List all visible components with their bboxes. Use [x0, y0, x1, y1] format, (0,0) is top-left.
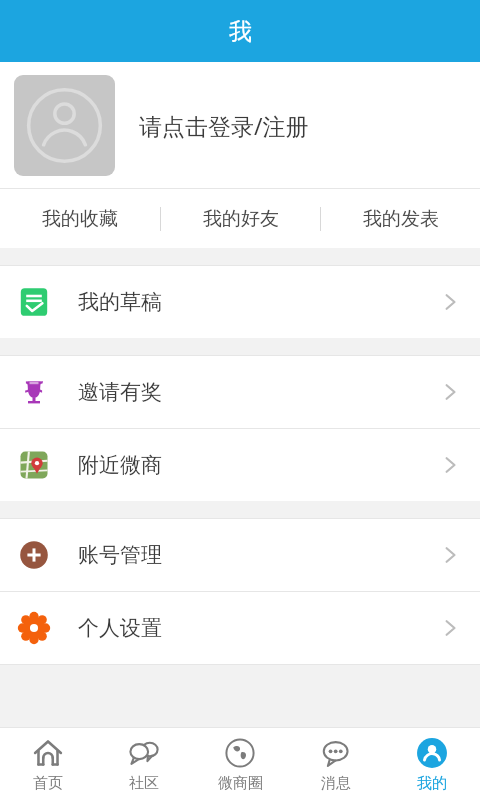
button[interactable]: 首页 — [0, 728, 96, 800]
staticText: 附近微商 — [78, 452, 162, 478]
button[interactable]: 消息 — [288, 728, 384, 800]
staticText: 我的好友 — [203, 207, 279, 231]
button[interactable]: 账号管理 — [0, 519, 480, 591]
button[interactable]: 我的好友 — [161, 189, 320, 248]
button[interactable]: 我的收藏 — [0, 189, 160, 248]
button[interactable]: 附近微商 — [0, 429, 480, 501]
button[interactable]: 社区 — [96, 728, 192, 800]
staticText: 账号管理 — [78, 542, 162, 568]
staticText: 我的草稿 — [78, 289, 162, 315]
staticText: 我的 — [417, 774, 447, 793]
staticText: 我的收藏 — [42, 207, 118, 231]
staticText: 个人设置 — [78, 615, 162, 641]
button[interactable]: 我的发表 — [321, 189, 480, 248]
staticText: 社区 — [129, 774, 159, 793]
staticText: 请点击登录/注册 — [139, 110, 309, 141]
button[interactable]: 请点击登录/注册 — [0, 62, 480, 188]
staticText: 我的发表 — [363, 207, 439, 231]
staticText: 我 — [229, 17, 252, 46]
staticText: 消息 — [321, 774, 351, 793]
button[interactable]: 微商圈 — [192, 728, 288, 800]
button[interactable]: 我的草稿 — [0, 266, 480, 338]
staticText: 邀请有奖 — [78, 379, 162, 405]
button[interactable]: 我的 — [384, 728, 480, 800]
staticText: 首页 — [33, 774, 63, 793]
button[interactable]: 邀请有奖 — [0, 356, 480, 428]
staticText: 微商圈 — [218, 774, 263, 793]
button[interactable]: 个人设置 — [0, 592, 480, 664]
